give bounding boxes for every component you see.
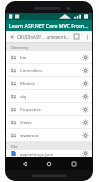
- button[interactable]: CRUDInASP … ameworkCore: [17, 31, 71, 42]
- button[interactable]: Learn ASP.NET Core MVC From Sample...: [6, 20, 92, 31]
- button[interactable]: Tabs: [71, 31, 82, 42]
- button[interactable]: obj: [6, 90, 92, 102]
- button[interactable]: Options for bin: [80, 52, 90, 62]
- button[interactable]: More options: [82, 32, 92, 42]
- button[interactable]: Views: [6, 116, 92, 128]
- button[interactable]: Back: [6, 31, 17, 42]
- button[interactable]: Options for appsettings.json: [80, 150, 90, 157]
- staticText: appsettings.json: [20, 151, 80, 157]
- button[interactable]: Options for Controllers: [80, 65, 90, 75]
- button[interactable]: Options for Models: [80, 78, 90, 88]
- staticText: File: [11, 144, 18, 149]
- staticText: CRUDInASP … ameworkCore: [17, 34, 71, 40]
- staticText: obj: [20, 93, 80, 99]
- button[interactable]: Controllers: [6, 64, 92, 76]
- button[interactable]: Recent apps: [68, 158, 80, 170]
- staticText: Directory: [11, 45, 29, 50]
- staticText: Learn ASP.NET Core MVC From Sample...: [9, 22, 89, 29]
- button[interactable]: bin: [6, 51, 92, 63]
- button[interactable]: Options for Properties: [80, 104, 90, 114]
- button[interactable]: Options for wwwroot: [80, 130, 90, 140]
- staticText: Controllers: [20, 67, 80, 73]
- button[interactable]: Models: [6, 77, 92, 89]
- button[interactable]: Properties: [6, 103, 92, 115]
- button[interactable]: Home: [43, 158, 55, 170]
- button[interactable]: appsettings.json: [6, 150, 92, 157]
- staticText: Models: [20, 80, 80, 86]
- button[interactable]: Back: [19, 158, 31, 170]
- staticText: bin: [20, 54, 80, 60]
- button[interactable]: wwwroot: [6, 129, 92, 141]
- button[interactable]: Options for obj: [80, 91, 90, 101]
- staticText: Views: [20, 119, 80, 125]
- button[interactable]: Options for Views: [80, 117, 90, 127]
- staticText: Properties: [20, 106, 80, 112]
- staticText: wwwroot: [20, 132, 80, 138]
